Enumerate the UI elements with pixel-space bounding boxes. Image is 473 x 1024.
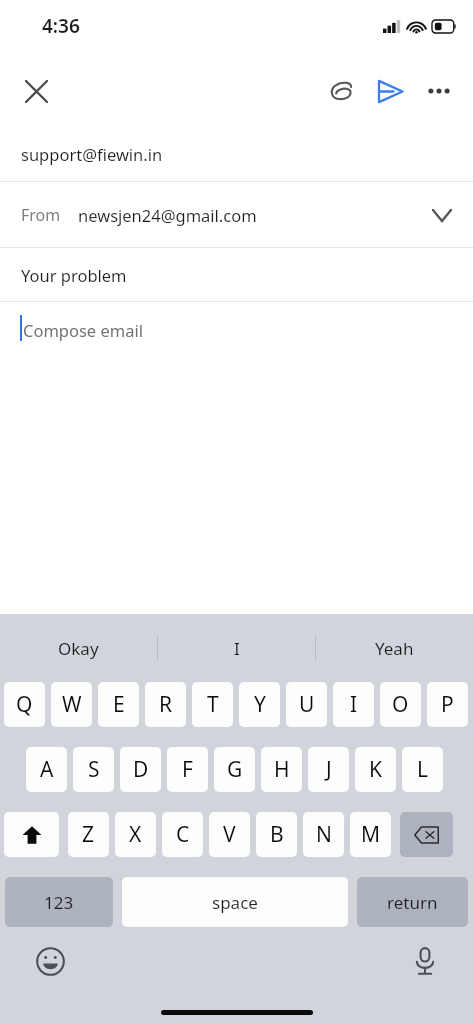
staticText: O (392, 690, 409, 719)
button[interactable]: A (26, 747, 67, 792)
button[interactable]: R (145, 682, 186, 727)
staticText: L (417, 755, 429, 784)
button[interactable]: return (357, 877, 468, 927)
button[interactable]: S (73, 747, 114, 792)
staticText: I (234, 637, 240, 660)
button[interactable]: Dictation (403, 939, 447, 983)
staticText: Your problem (21, 264, 127, 286)
staticText: Z (82, 820, 95, 849)
button[interactable]: Y (239, 682, 280, 727)
button[interactable]: H (261, 747, 302, 792)
button[interactable]: W (51, 682, 92, 727)
button[interactable]: Attach file (317, 67, 365, 115)
staticText: S (88, 755, 100, 784)
staticText: B (270, 820, 284, 849)
staticText: A (40, 755, 54, 784)
button[interactable]: T (192, 682, 233, 727)
button[interactable]: G (214, 747, 255, 792)
button[interactable]: Your problem (0, 248, 473, 301)
staticText: F (182, 755, 193, 784)
button[interactable]: P (427, 682, 468, 727)
staticText: T (207, 690, 219, 719)
staticText: 123 (44, 891, 74, 914)
staticText: X (129, 820, 142, 849)
button[interactable]: Compose email (0, 302, 473, 362)
staticText: Q (16, 690, 33, 719)
button[interactable]: L (402, 747, 443, 792)
button[interactable]: space (122, 877, 348, 927)
staticText: support@fiewin.in (21, 143, 163, 165)
staticText: G (227, 755, 243, 784)
button[interactable]: Send (365, 66, 415, 116)
button[interactable]: support@fiewin.in (0, 126, 473, 181)
button[interactable]: X (115, 812, 156, 857)
staticText: Okay (58, 637, 99, 660)
button[interactable]: N (303, 812, 344, 857)
button[interactable]: I (333, 682, 374, 727)
staticText: D (133, 755, 149, 784)
button[interactable]: I (158, 614, 315, 682)
button[interactable]: More options (415, 67, 463, 115)
staticText: return (387, 891, 438, 914)
staticText: E (113, 690, 125, 719)
staticText: V (223, 820, 236, 849)
button[interactable]: C (162, 812, 203, 857)
button[interactable]: B (256, 812, 297, 857)
button[interactable]: Z (68, 812, 109, 857)
staticText: Yeah (375, 637, 414, 660)
staticText: N (316, 820, 332, 849)
button[interactable]: V (209, 812, 250, 857)
button[interactable]: Shift (4, 812, 59, 857)
button[interactable]: Yeah (316, 614, 473, 682)
button[interactable]: F (167, 747, 208, 792)
staticText: W (62, 690, 82, 719)
staticText: U (299, 690, 315, 719)
button[interactable]: From (0, 182, 473, 247)
button[interactable]: K (355, 747, 396, 792)
button[interactable]: Close (14, 69, 58, 113)
button[interactable]: M (350, 812, 391, 857)
button[interactable]: 123 (5, 877, 113, 927)
staticText: R (159, 690, 173, 719)
staticText: C (176, 820, 190, 849)
button[interactable]: Backspace (400, 812, 453, 857)
staticText: K (369, 755, 382, 784)
button[interactable]: E (98, 682, 139, 727)
staticText: newsjen24@gmail.com (78, 204, 257, 226)
button[interactable]: Emoji (28, 939, 72, 983)
staticText: From (21, 204, 61, 226)
staticText: space (212, 891, 258, 914)
staticText: P (441, 690, 454, 719)
staticText: H (274, 755, 290, 784)
button[interactable]: J (308, 747, 349, 792)
button[interactable]: Q (4, 682, 45, 727)
button[interactable]: U (286, 682, 327, 727)
button[interactable]: D (120, 747, 161, 792)
staticText: 4:36 (42, 13, 80, 39)
button[interactable]: Okay (0, 614, 157, 682)
staticText: I (350, 690, 358, 719)
staticText: M (361, 820, 381, 849)
staticText: Compose email (23, 319, 143, 341)
staticText: J (326, 755, 332, 784)
staticText: Y (254, 690, 266, 719)
button[interactable]: O (380, 682, 421, 727)
